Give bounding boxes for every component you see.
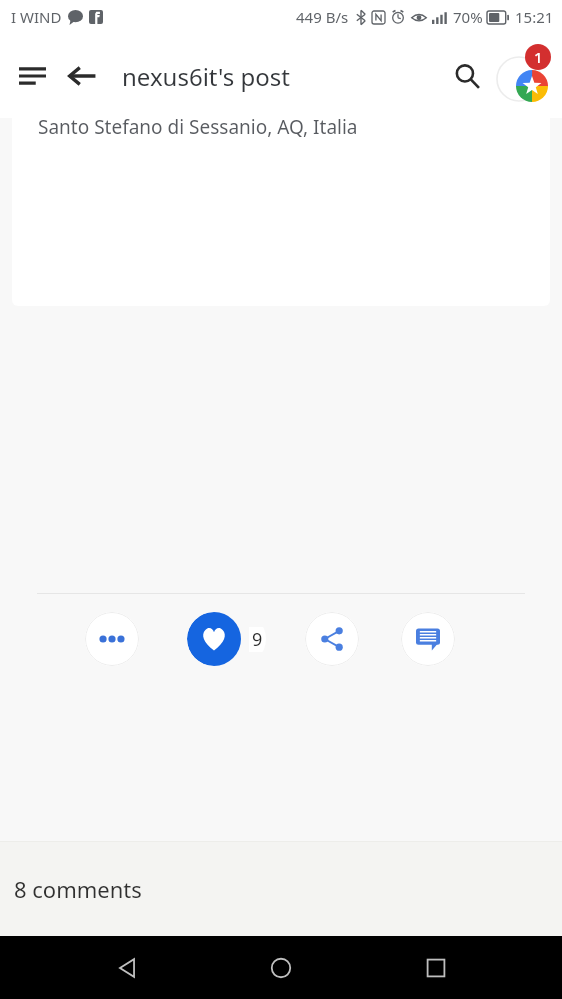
button[interactable]: Back <box>99 940 155 996</box>
staticText: 1 <box>534 47 543 67</box>
staticText: nexus6it's post <box>122 60 444 93</box>
button[interactable]: Like, 9 <box>187 612 266 666</box>
button[interactable]: Search <box>444 53 490 99</box>
button[interactable]: Comment <box>401 612 455 666</box>
staticText: I WIND <box>11 7 62 27</box>
button[interactable]: Menu <box>14 58 50 94</box>
staticText: 9 <box>252 627 263 652</box>
staticText: Santo Stefano di Sessanio, AQ, Italia <box>38 118 358 140</box>
staticText: 70% <box>453 7 483 27</box>
button[interactable]: Share <box>305 612 359 666</box>
staticText: 8 comments <box>14 874 142 904</box>
button[interactable]: Santo Stefano di Sessanio, AQ, Italia <box>12 118 550 306</box>
staticText: 15:21 <box>515 7 554 27</box>
button[interactable]: Recent apps <box>408 940 464 996</box>
button[interactable]: Account <box>496 50 548 102</box>
button[interactable]: 8 comments <box>0 842 562 936</box>
staticText: 449 B/s <box>296 7 349 27</box>
button[interactable]: Home <box>253 940 309 996</box>
button[interactable]: Back <box>60 54 104 98</box>
button[interactable]: More options <box>85 612 139 666</box>
